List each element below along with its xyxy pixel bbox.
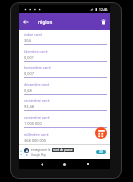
button[interactable]: centimètre carré — [24, 97, 108, 114]
staticText: 368 000 000 — [24, 138, 47, 143]
staticText: indice carré — [24, 32, 43, 36]
button[interactable]: décamètre carré — [24, 81, 108, 98]
staticText: Google Play — [31, 153, 46, 157]
button[interactable]: OK — [96, 150, 106, 154]
button[interactable]: Back — [19, 13, 33, 30]
staticText: 93,48 — [24, 104, 34, 109]
staticText: mot de passe — [53, 148, 73, 152]
button[interactable]: Delete — [96, 13, 110, 30]
staticText: 0,007 — [24, 71, 34, 76]
staticText: hectomètre carré — [24, 65, 51, 69]
button[interactable]: Back — [30, 159, 53, 169]
staticText: millimètre carré — [24, 132, 49, 136]
button[interactable]: Recents — [76, 159, 99, 169]
staticText: kilomètre carré — [24, 49, 48, 53]
staticText: 12:46 — [99, 7, 108, 11]
staticText: 1 000 000 — [24, 121, 42, 126]
staticText: décamètre carré — [24, 82, 50, 86]
staticText: centimètre carré — [24, 115, 50, 119]
staticText: centimètre carré — [24, 98, 50, 102]
button[interactable]: Calculate — [95, 127, 107, 139]
button[interactable]: Home — [53, 159, 76, 169]
staticText: 304 — [24, 38, 31, 43]
button[interactable]: centimètre carré — [24, 114, 108, 131]
button[interactable]: kilomètre carré — [24, 48, 108, 65]
button[interactable]: hectomètre carré — [24, 64, 108, 81]
button[interactable]: millimètre carré — [24, 131, 108, 148]
staticText: OK — [99, 150, 104, 154]
staticText: 0,68 — [24, 88, 32, 93]
staticText: région — [38, 19, 53, 25]
button[interactable]: indice carré — [24, 31, 108, 48]
staticText: 0,001 — [24, 55, 34, 60]
staticText: enregistrer le — [31, 148, 52, 152]
